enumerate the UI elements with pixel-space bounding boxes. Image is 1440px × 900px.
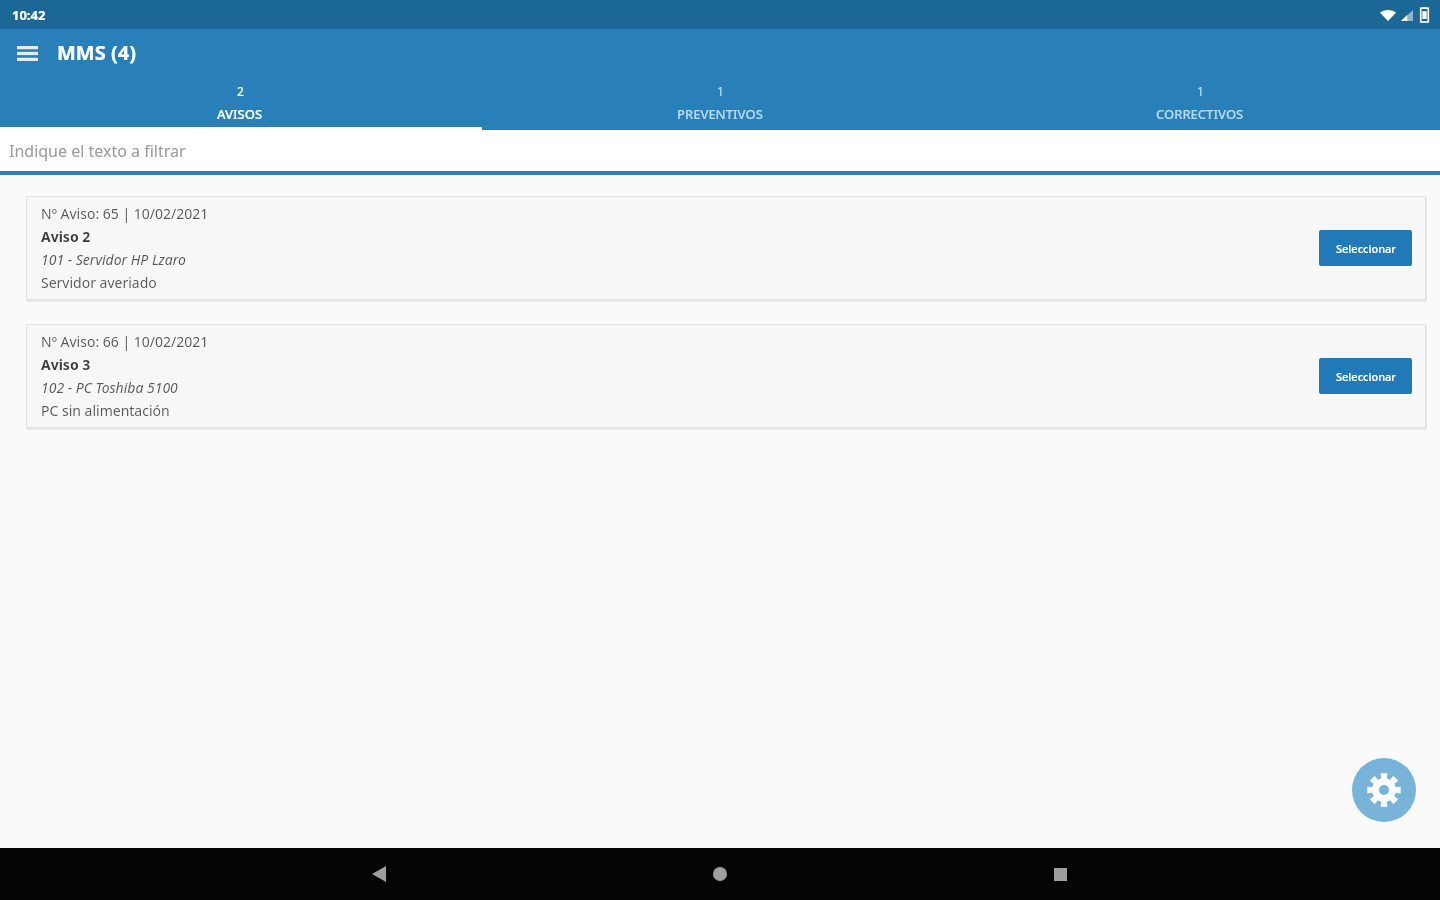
button[interactable]: Settings [1352, 758, 1416, 822]
button[interactable]: 1 [960, 76, 1440, 130]
staticText: Seleccionar [1336, 241, 1396, 256]
button[interactable]: Back [356, 850, 404, 898]
button[interactable]: Recent apps [1036, 850, 1084, 898]
staticText: Nº Aviso: 65 | 10/02/2021 [41, 204, 209, 223]
button[interactable]: Seleccionar [1319, 358, 1412, 394]
staticText: 10:42 [12, 6, 46, 24]
staticText: 101 - Servidor HP Lzaro [41, 250, 186, 269]
staticText: 1 [717, 83, 724, 99]
staticText: Nº Aviso: 66 | 10/02/2021 [41, 332, 209, 351]
staticText: Indique el texto a filtrar [9, 140, 186, 162]
staticText: AVISOS [217, 105, 263, 123]
button[interactable]: Nº Aviso: 65 | 10/02/2021 [26, 196, 1426, 300]
button[interactable]: 1 [480, 76, 960, 130]
staticText: Aviso 2 [41, 227, 91, 246]
staticText: CORRECTIVOS [1156, 105, 1244, 123]
staticText: 2 [237, 83, 244, 99]
staticText: MMS (4) [57, 39, 136, 66]
button[interactable]: Home [696, 850, 744, 898]
button[interactable]: Nº Aviso: 66 | 10/02/2021 [26, 324, 1426, 428]
button[interactable]: 2 [0, 76, 480, 130]
staticText: PREVENTIVOS [677, 105, 763, 123]
staticText: PC sin alimentación [41, 401, 170, 420]
button[interactable]: Open navigation menu [5, 31, 49, 75]
staticText: Servidor averiado [41, 273, 157, 292]
staticText: 1 [1197, 83, 1204, 99]
staticText: Seleccionar [1336, 369, 1396, 384]
staticText: 102 - PC Toshiba 5100 [41, 378, 178, 397]
staticText: Aviso 3 [41, 355, 91, 374]
button[interactable]: Seleccionar [1319, 230, 1412, 266]
button[interactable]: Indique el texto a filtrar [0, 130, 1440, 171]
